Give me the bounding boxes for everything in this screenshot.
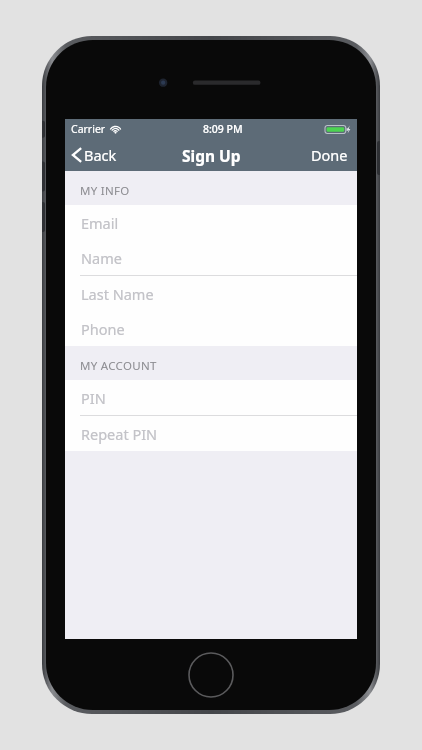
staticText: Name [81,248,122,268]
staticText: PIN [81,388,106,408]
staticText: Done [311,145,348,165]
button[interactable]: Email [65,205,357,240]
staticText: 8:09 PM [203,122,243,136]
staticText: Back [84,145,117,165]
staticText: Sign Up [182,145,241,166]
button[interactable]: Last Name [65,276,357,311]
button[interactable]: Repeat PIN [65,416,357,451]
button[interactable]: PIN [65,380,357,416]
button[interactable]: Name [65,240,357,276]
button[interactable]: Done [302,139,357,171]
staticText: Email [81,213,119,233]
staticText: Carrier [71,122,106,136]
button[interactable]: Back [65,139,127,171]
button[interactable]: Phone [65,311,357,346]
staticText: MY ACCOUNT [80,358,157,374]
staticText: Repeat PIN [81,424,158,444]
staticText: Last Name [81,284,154,304]
staticText: MY INFO [80,183,130,199]
staticText: Phone [81,319,125,339]
